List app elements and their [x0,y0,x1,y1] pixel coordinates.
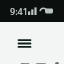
button[interactable]: Menu [8,27,40,59]
staticText: 9:41 [10,5,28,17]
